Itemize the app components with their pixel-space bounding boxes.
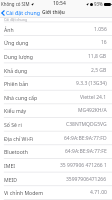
staticText: Ứng dụng bbox=[4, 39, 29, 46]
staticText: 35997906471266 bbox=[66, 176, 107, 183]
button[interactable]: Bluetooth bbox=[0, 144, 112, 158]
staticText: 10:54 bbox=[53, 0, 66, 7]
staticText: Phiên bản bbox=[4, 80, 29, 87]
staticText: Cài đặt chung bbox=[6, 9, 40, 16]
staticText: 1.056 bbox=[94, 26, 107, 33]
button[interactable]: Back to Cài đặt chung bbox=[0, 9, 42, 16]
staticText: Viettel 24.1 bbox=[80, 94, 107, 101]
staticText: 11,8 GB bbox=[88, 53, 107, 60]
staticText: Số Sê ri bbox=[4, 121, 22, 128]
button[interactable]: Ảnh bbox=[0, 22, 112, 36]
staticText: IMEI bbox=[4, 162, 16, 169]
button[interactable]: Nhà cung cấp bbox=[0, 90, 112, 104]
button[interactable]: Kiểu máy bbox=[0, 103, 112, 117]
staticText: Ảnh bbox=[4, 26, 14, 33]
staticText: MG492KH/A bbox=[78, 107, 107, 114]
staticText: Vi chỉnh Modem bbox=[4, 189, 44, 196]
staticText: 4.71.00 bbox=[90, 189, 107, 196]
button[interactable]: Ứng dụng bbox=[0, 35, 112, 49]
staticText: 93% bbox=[94, 1, 103, 7]
staticText: Nhà cung cấp bbox=[4, 94, 38, 101]
staticText: Giới thiệu bbox=[42, 9, 65, 16]
button[interactable]: Địa chỉ Wi-Fi bbox=[0, 131, 112, 145]
staticText: C38NTMQDG5VG bbox=[66, 121, 107, 128]
staticText: Địa chỉ Wi-Fi bbox=[4, 135, 34, 142]
button[interactable]: IMEI bbox=[0, 158, 112, 172]
button[interactable]: MEID bbox=[0, 172, 112, 186]
staticText: 35 997906 471266 1 bbox=[60, 162, 107, 169]
button[interactable]: Số Sê ri bbox=[0, 117, 112, 131]
staticText: 64:9A:BE:9A:77:FD bbox=[64, 135, 107, 142]
staticText: Khả dụng bbox=[4, 67, 28, 74]
button[interactable]: Dung lượng bbox=[0, 49, 112, 63]
staticText: 2,5 GB bbox=[91, 67, 107, 74]
staticText: Bluetooth bbox=[4, 148, 28, 155]
button[interactable]: Phiên bản bbox=[0, 76, 112, 90]
staticText: Dung lượng bbox=[4, 53, 33, 60]
staticText: Không có SIM bbox=[1, 1, 30, 7]
button[interactable]: Khả dụng bbox=[0, 63, 112, 77]
staticText: 9.3.3 (13G34) bbox=[76, 80, 107, 87]
staticText: 16 bbox=[101, 39, 107, 46]
button[interactable]: Vi chỉnh Modem bbox=[0, 185, 112, 199]
staticText: Kiểu máy bbox=[4, 107, 27, 114]
staticText: 64:9A:BE:9A:77:FE bbox=[65, 148, 107, 155]
staticText: MEID bbox=[4, 176, 18, 183]
staticText: Cài đặt chung bbox=[4, 17, 28, 22]
